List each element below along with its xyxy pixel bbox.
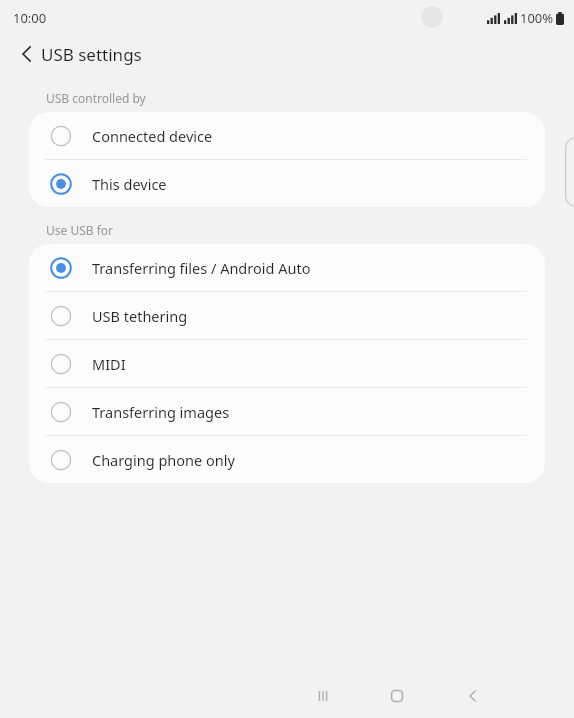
button[interactable]: Connected device bbox=[29, 112, 545, 159]
staticText: Transferring images bbox=[92, 402, 230, 422]
button[interactable]: Home bbox=[377, 676, 417, 716]
button[interactable]: Transferring images bbox=[29, 388, 545, 435]
button[interactable]: Back bbox=[7, 36, 47, 72]
staticText: USB settings bbox=[41, 43, 142, 66]
staticText: This device bbox=[92, 174, 167, 194]
staticText: USB tethering bbox=[92, 306, 188, 326]
button[interactable]: MIDI bbox=[29, 340, 545, 387]
staticText: Connected device bbox=[92, 126, 213, 146]
staticText: Transferring files / Android Auto bbox=[92, 258, 311, 278]
staticText: USB controlled by bbox=[46, 90, 146, 106]
staticText: MIDI bbox=[92, 354, 126, 374]
button[interactable]: Back bbox=[453, 676, 493, 716]
staticText: Use USB for bbox=[46, 222, 114, 238]
button[interactable]: Transferring files / Android Auto bbox=[29, 244, 545, 291]
button[interactable]: This device bbox=[29, 160, 545, 207]
staticText: 100% bbox=[520, 9, 554, 27]
button[interactable]: USB tethering bbox=[29, 292, 545, 339]
button[interactable]: Charging phone only bbox=[29, 436, 545, 483]
button[interactable]: Recent apps bbox=[303, 676, 343, 716]
staticText: 10:00 bbox=[13, 9, 47, 27]
staticText: Charging phone only bbox=[92, 450, 235, 470]
